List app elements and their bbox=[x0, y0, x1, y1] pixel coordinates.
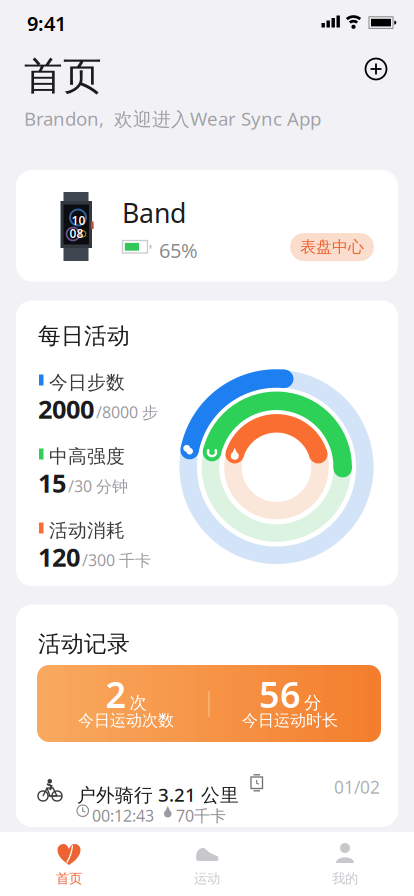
staticText: /30 分钟 bbox=[68, 475, 128, 497]
staticText: 08 bbox=[69, 225, 83, 241]
staticText: 120 bbox=[38, 540, 80, 574]
staticText: 15 bbox=[38, 466, 66, 500]
staticText: 今日运动时长 bbox=[242, 711, 338, 730]
staticText: 今日运动次数 bbox=[78, 711, 174, 730]
staticText: 活动记录 bbox=[38, 630, 130, 658]
staticText: 表盘中心 bbox=[300, 237, 364, 257]
staticText: /300 千卡 bbox=[82, 549, 151, 571]
button[interactable]: 添加设备 bbox=[361, 54, 391, 84]
staticText: 10 bbox=[71, 212, 85, 228]
staticText: 今日步数 bbox=[49, 371, 125, 394]
staticText: 01/02 bbox=[334, 775, 380, 798]
button[interactable]: 户外骑行 3.21 公里 bbox=[24, 766, 398, 828]
staticText: 2 bbox=[105, 670, 126, 718]
staticText: Brandon, 欢迎进入Wear Sync App bbox=[24, 106, 321, 131]
staticText: 次 bbox=[129, 692, 146, 713]
button[interactable]: 我的 bbox=[276, 832, 414, 896]
staticText: 户外骑行 3.21 公里 bbox=[77, 782, 239, 807]
staticText: 65% bbox=[159, 237, 198, 264]
staticText: 运动 bbox=[194, 870, 220, 887]
staticText: 00:12:43 bbox=[92, 805, 154, 826]
staticText: 9:41 bbox=[27, 10, 66, 37]
staticText: 分 bbox=[304, 692, 321, 713]
button[interactable]: 运动 bbox=[138, 832, 276, 896]
staticText: 2000 bbox=[38, 392, 94, 426]
staticText: /8000 步 bbox=[96, 401, 158, 423]
staticText: 首页 bbox=[56, 870, 82, 887]
staticText: 活动消耗 bbox=[49, 519, 125, 542]
staticText: 每日活动 bbox=[38, 322, 130, 350]
button[interactable]: 今日运动时长 56分 bbox=[220, 666, 360, 728]
button[interactable]: 首页 bbox=[0, 832, 138, 896]
staticText: 我的 bbox=[332, 870, 358, 887]
button[interactable]: 今日运动次数 2次 bbox=[56, 666, 196, 728]
staticText: 首页 bbox=[24, 52, 102, 100]
button[interactable]: 表盘中心 bbox=[290, 233, 374, 261]
staticText: 中高强度 bbox=[49, 445, 125, 468]
staticText: 56 bbox=[259, 670, 301, 718]
staticText: 70千卡 bbox=[176, 805, 226, 826]
staticText: Band bbox=[122, 195, 186, 230]
